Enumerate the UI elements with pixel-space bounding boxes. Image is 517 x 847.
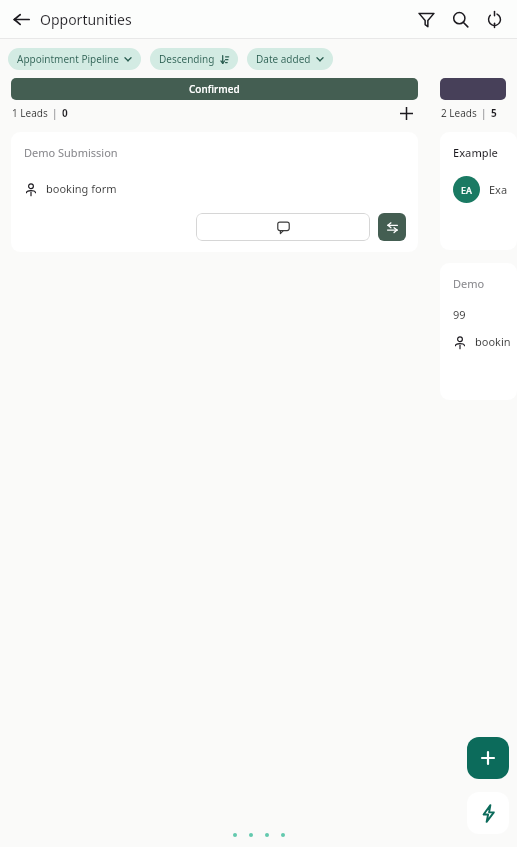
button[interactable]: Example Account <box>440 132 517 250</box>
button[interactable]: Back <box>6 4 36 34</box>
button[interactable] <box>440 78 506 100</box>
staticText: EA <box>461 184 472 196</box>
staticText: Date added <box>256 52 311 66</box>
staticText: 0 <box>62 106 68 120</box>
staticText: Example Account <box>453 145 517 160</box>
staticText: booking form <box>475 334 517 349</box>
button[interactable]: Demo Submission <box>440 263 517 400</box>
staticText: 2 Leads <box>441 106 477 120</box>
staticText: Appointment Pipeline <box>17 52 119 66</box>
button[interactable]: Search <box>443 2 477 36</box>
button[interactable]: Message <box>196 213 370 241</box>
button[interactable]: Refresh <box>477 2 511 36</box>
button[interactable]: Filter <box>409 2 443 36</box>
staticText: Opportunities <box>40 10 132 29</box>
staticText: Descending <box>159 52 215 66</box>
button[interactable]: Descending <box>150 48 238 70</box>
staticText: 1 Leads <box>12 106 48 120</box>
staticText: Confirmed <box>189 82 240 96</box>
staticText: | <box>481 106 487 120</box>
button[interactable]: Quick actions <box>467 792 509 834</box>
staticText: Demo Submission <box>453 276 517 291</box>
button[interactable]: Appointment Pipeline <box>8 48 141 70</box>
staticText: 99 <box>453 307 466 322</box>
button[interactable]: Date added <box>247 48 333 70</box>
staticText: | <box>52 106 58 120</box>
button[interactable]: Add opportunity <box>467 737 509 779</box>
staticText: booking form <box>46 181 117 196</box>
button[interactable]: Add lead <box>395 102 417 124</box>
button[interactable]: Confirmed <box>11 78 418 100</box>
button[interactable]: Demo Submission <box>11 132 418 252</box>
staticText: Example <box>489 182 517 197</box>
staticText: 5 <box>491 106 497 120</box>
staticText: Demo Submission <box>24 145 118 160</box>
button[interactable]: Move stage <box>378 213 406 241</box>
